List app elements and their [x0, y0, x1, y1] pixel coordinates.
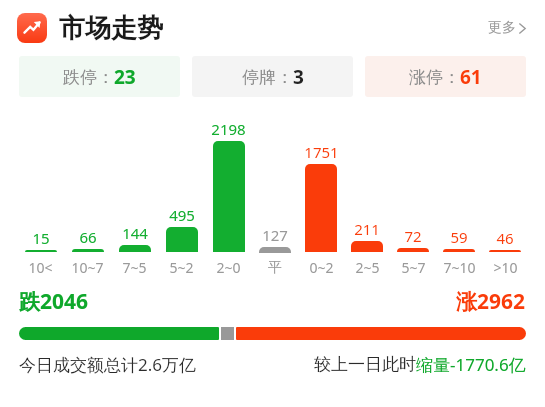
staticText: 涨2962 — [456, 287, 526, 316]
staticText: 平 — [268, 259, 282, 277]
staticText: 10~7 — [71, 258, 104, 277]
staticText: 市场走势 — [59, 12, 163, 45]
staticText: 3 — [293, 64, 304, 90]
button[interactable]: 更多 — [474, 11, 541, 45]
staticText: 495 — [169, 205, 195, 225]
other: 市场走势图标 — [17, 13, 47, 43]
staticText: 10< — [28, 258, 53, 277]
staticText: 涨停： — [409, 67, 460, 88]
button[interactable]: 停牌： — [192, 56, 353, 97]
staticText: 66 — [79, 227, 97, 247]
staticText: 较上一日此时 — [314, 354, 416, 375]
staticText: 144 — [122, 223, 148, 243]
staticText: 跌2046 — [19, 287, 89, 316]
staticText: 今日成交额总计2.6万亿 — [19, 353, 197, 376]
staticText: 2~0 — [216, 258, 241, 277]
staticText: 2198 — [211, 119, 246, 139]
staticText: 127 — [262, 225, 288, 245]
staticText: 5~7 — [401, 258, 426, 277]
button[interactable]: 跌停： — [19, 56, 180, 97]
staticText: 7~10 — [443, 258, 476, 277]
staticText: 211 — [354, 219, 380, 239]
staticText: 23 — [114, 64, 136, 90]
staticText: 跌停： — [63, 67, 114, 88]
staticText: 1751 — [304, 142, 339, 162]
staticText: 2~5 — [355, 258, 380, 277]
staticText: 更多 — [488, 19, 516, 37]
staticText: 46 — [496, 228, 514, 248]
staticText: 7~5 — [122, 258, 147, 277]
staticText: >10 — [493, 258, 518, 277]
staticText: 72 — [404, 226, 422, 246]
staticText: 缩量-1770.6亿 — [416, 353, 526, 376]
staticText: 0~2 — [309, 258, 334, 277]
staticText: 61 — [460, 64, 482, 90]
button[interactable]: 涨停： — [365, 56, 526, 97]
staticText: 59 — [450, 227, 468, 247]
staticText: 5~2 — [169, 258, 194, 277]
staticText: 15 — [32, 228, 50, 248]
staticText: 停牌： — [242, 67, 293, 88]
